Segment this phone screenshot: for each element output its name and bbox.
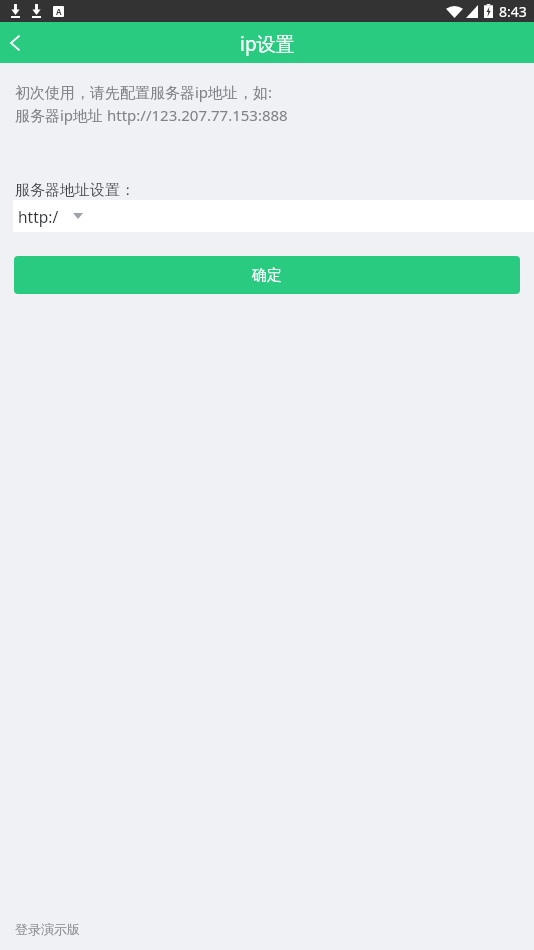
button[interactable]: 登录演示版	[15, 921, 80, 937]
button[interactable]: 确定	[14, 256, 520, 294]
staticText: http:/	[18, 206, 59, 227]
staticText: 登录演示版	[15, 921, 80, 937]
staticText: 确定	[252, 266, 282, 285]
staticText: A	[56, 6, 62, 17]
staticText: 初次使用，请先配置服务器ip地址，如: 服务器ip地址 http://123.2…	[15, 82, 288, 126]
button[interactable]: http:/	[13, 200, 534, 232]
button[interactable]: Back	[0, 22, 29, 63]
staticText: ip设置	[240, 31, 295, 57]
staticText: 8:43	[499, 2, 527, 21]
staticText: 服务器地址设置：	[15, 181, 135, 200]
